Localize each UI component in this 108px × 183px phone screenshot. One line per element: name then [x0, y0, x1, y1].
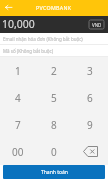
button[interactable]: 2: [36, 57, 72, 84]
staticText: 1: [15, 64, 21, 78]
staticText: 00: [12, 145, 24, 159]
staticText: Thanh toán: [41, 169, 68, 176]
staticText: Email nhận hóa đơn (Không bắt buộc): [3, 36, 83, 42]
button[interactable]: 6: [72, 84, 108, 111]
staticText: 0: [51, 145, 57, 159]
staticText: 10,000: [2, 17, 35, 31]
button[interactable]: Backspace: [72, 138, 108, 165]
button[interactable]: 8: [36, 111, 72, 138]
button[interactable]: Back: [0, 0, 16, 14]
button[interactable]: 0: [36, 138, 72, 165]
button[interactable]: VND: [89, 20, 104, 29]
button[interactable]: Thanh toán: [3, 165, 105, 179]
button[interactable]: 4: [0, 84, 36, 111]
staticText: PVCOMBANK: [36, 4, 72, 11]
staticText: VND: [92, 22, 102, 28]
staticText: 5: [51, 91, 57, 105]
button[interactable]: 00: [0, 138, 36, 165]
button[interactable]: 3: [72, 57, 108, 84]
staticText: 9: [87, 118, 93, 132]
staticText: 3: [87, 64, 93, 78]
button[interactable]: 5: [36, 84, 72, 111]
other: Backspace: [83, 146, 98, 157]
staticText: 6: [87, 91, 93, 105]
button[interactable]: 9: [72, 111, 108, 138]
button[interactable]: 1: [0, 57, 36, 84]
staticText: 8: [51, 118, 57, 132]
staticText: 4: [15, 91, 21, 105]
staticText: 2: [51, 64, 57, 78]
staticText: Mã số (Không bắt buộc): [3, 48, 54, 54]
staticText: 7: [15, 118, 21, 132]
button[interactable]: 7: [0, 111, 36, 138]
